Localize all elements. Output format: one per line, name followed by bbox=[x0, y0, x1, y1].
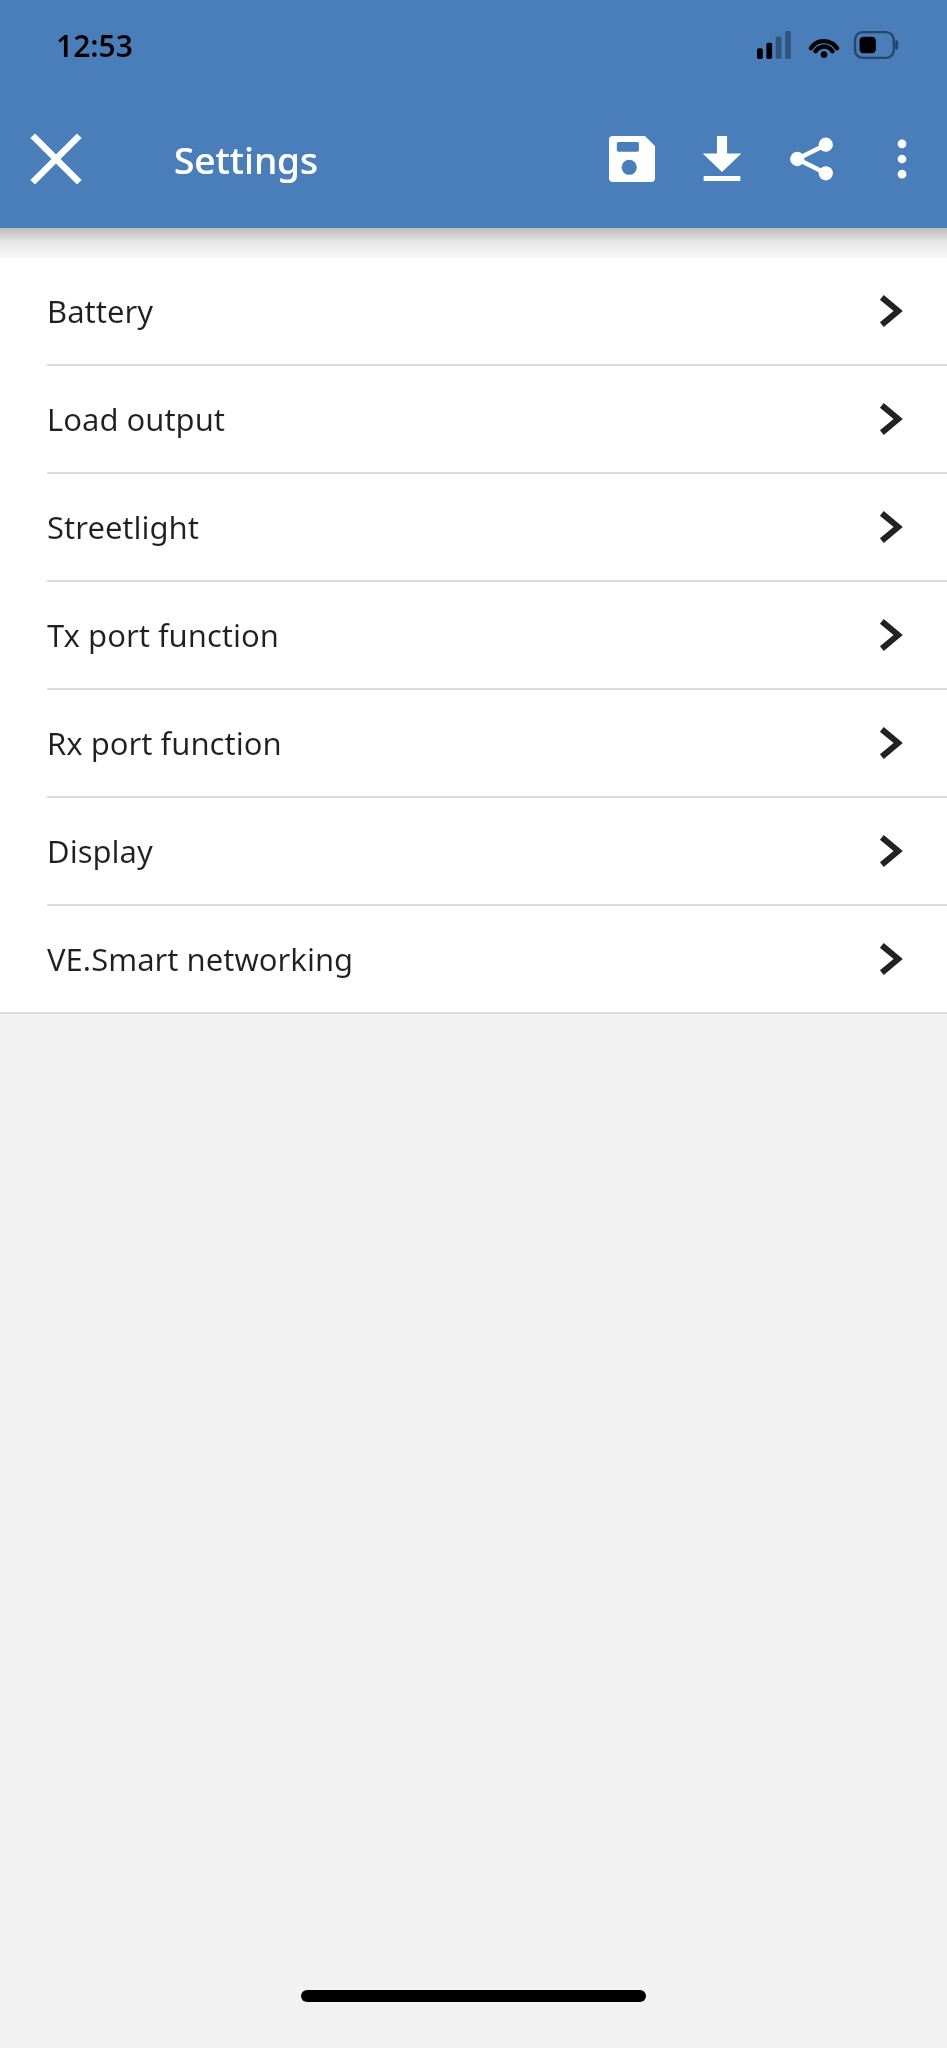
button[interactable]: Save bbox=[587, 114, 677, 204]
button[interactable]: More options bbox=[857, 114, 947, 204]
button[interactable]: Load output bbox=[0, 366, 947, 472]
button[interactable]: VE.Smart networking bbox=[0, 906, 947, 1012]
staticText: Rx port function bbox=[47, 722, 873, 764]
staticText: Settings bbox=[174, 134, 319, 184]
button[interactable]: Display bbox=[0, 798, 947, 904]
staticText: Battery bbox=[47, 290, 873, 332]
button[interactable]: Battery bbox=[0, 258, 947, 364]
button[interactable]: Rx port function bbox=[0, 690, 947, 796]
staticText: Tx port function bbox=[47, 614, 873, 656]
button[interactable]: Streetlight bbox=[0, 474, 947, 580]
staticText: VE.Smart networking bbox=[47, 938, 873, 980]
button[interactable]: Share bbox=[767, 114, 857, 204]
button[interactable]: Tx port function bbox=[0, 582, 947, 688]
staticText: Load output bbox=[47, 398, 873, 440]
button[interactable]: Download bbox=[677, 114, 767, 204]
staticText: Streetlight bbox=[47, 506, 873, 548]
staticText: Display bbox=[47, 830, 873, 872]
staticText: 12:53 bbox=[56, 25, 133, 66]
button[interactable]: Close bbox=[8, 111, 104, 207]
